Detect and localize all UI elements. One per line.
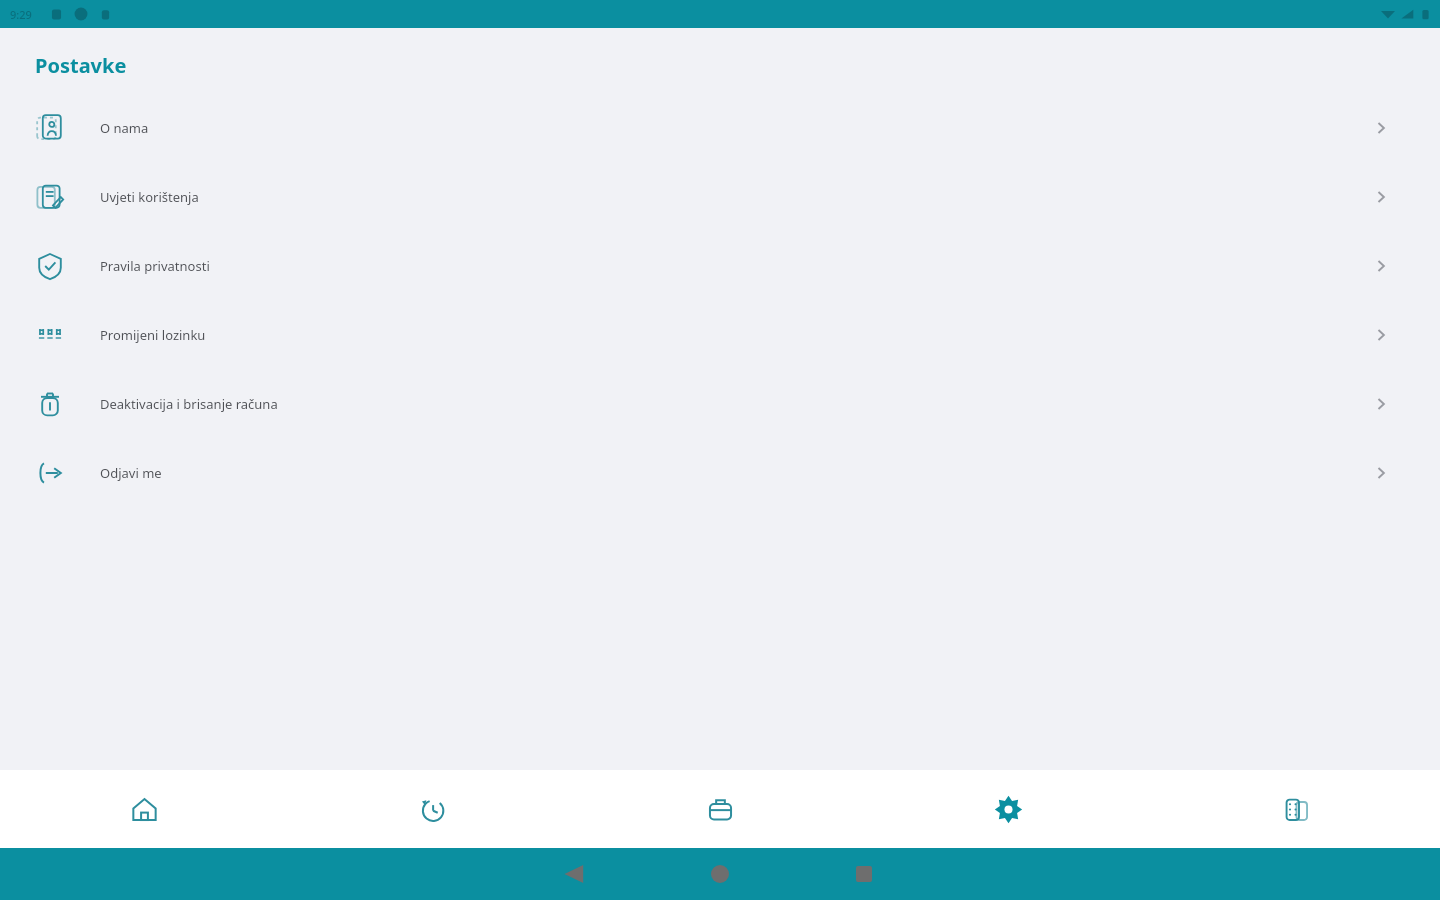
button[interactable]: Home <box>0 770 288 848</box>
button[interactable]: Company <box>1152 770 1440 848</box>
staticText: Promijeni lozinku <box>100 326 206 344</box>
button[interactable]: Deaktivacija i brisanje računa <box>0 369 1440 438</box>
staticText: O nama <box>100 119 149 137</box>
staticText: Uvjeti korištenja <box>100 188 199 206</box>
button[interactable]: Settings <box>864 770 1152 848</box>
button[interactable]: O nama <box>0 93 1440 162</box>
button[interactable]: Promijeni lozinku <box>0 300 1440 369</box>
button[interactable]: Pravila privatnosti <box>0 231 1440 300</box>
button[interactable]: Briefcase <box>576 770 864 848</box>
staticText: Odjavi me <box>100 464 162 482</box>
staticText: 9:29 <box>10 7 32 22</box>
button[interactable]: Odjavi me <box>0 438 1440 507</box>
staticText: Pravila privatnosti <box>100 257 210 275</box>
button[interactable]: History <box>288 770 576 848</box>
staticText: Deaktivacija i brisanje računa <box>100 395 278 413</box>
staticText: Postavke <box>35 52 127 79</box>
button[interactable]: Uvjeti korištenja <box>0 162 1440 231</box>
